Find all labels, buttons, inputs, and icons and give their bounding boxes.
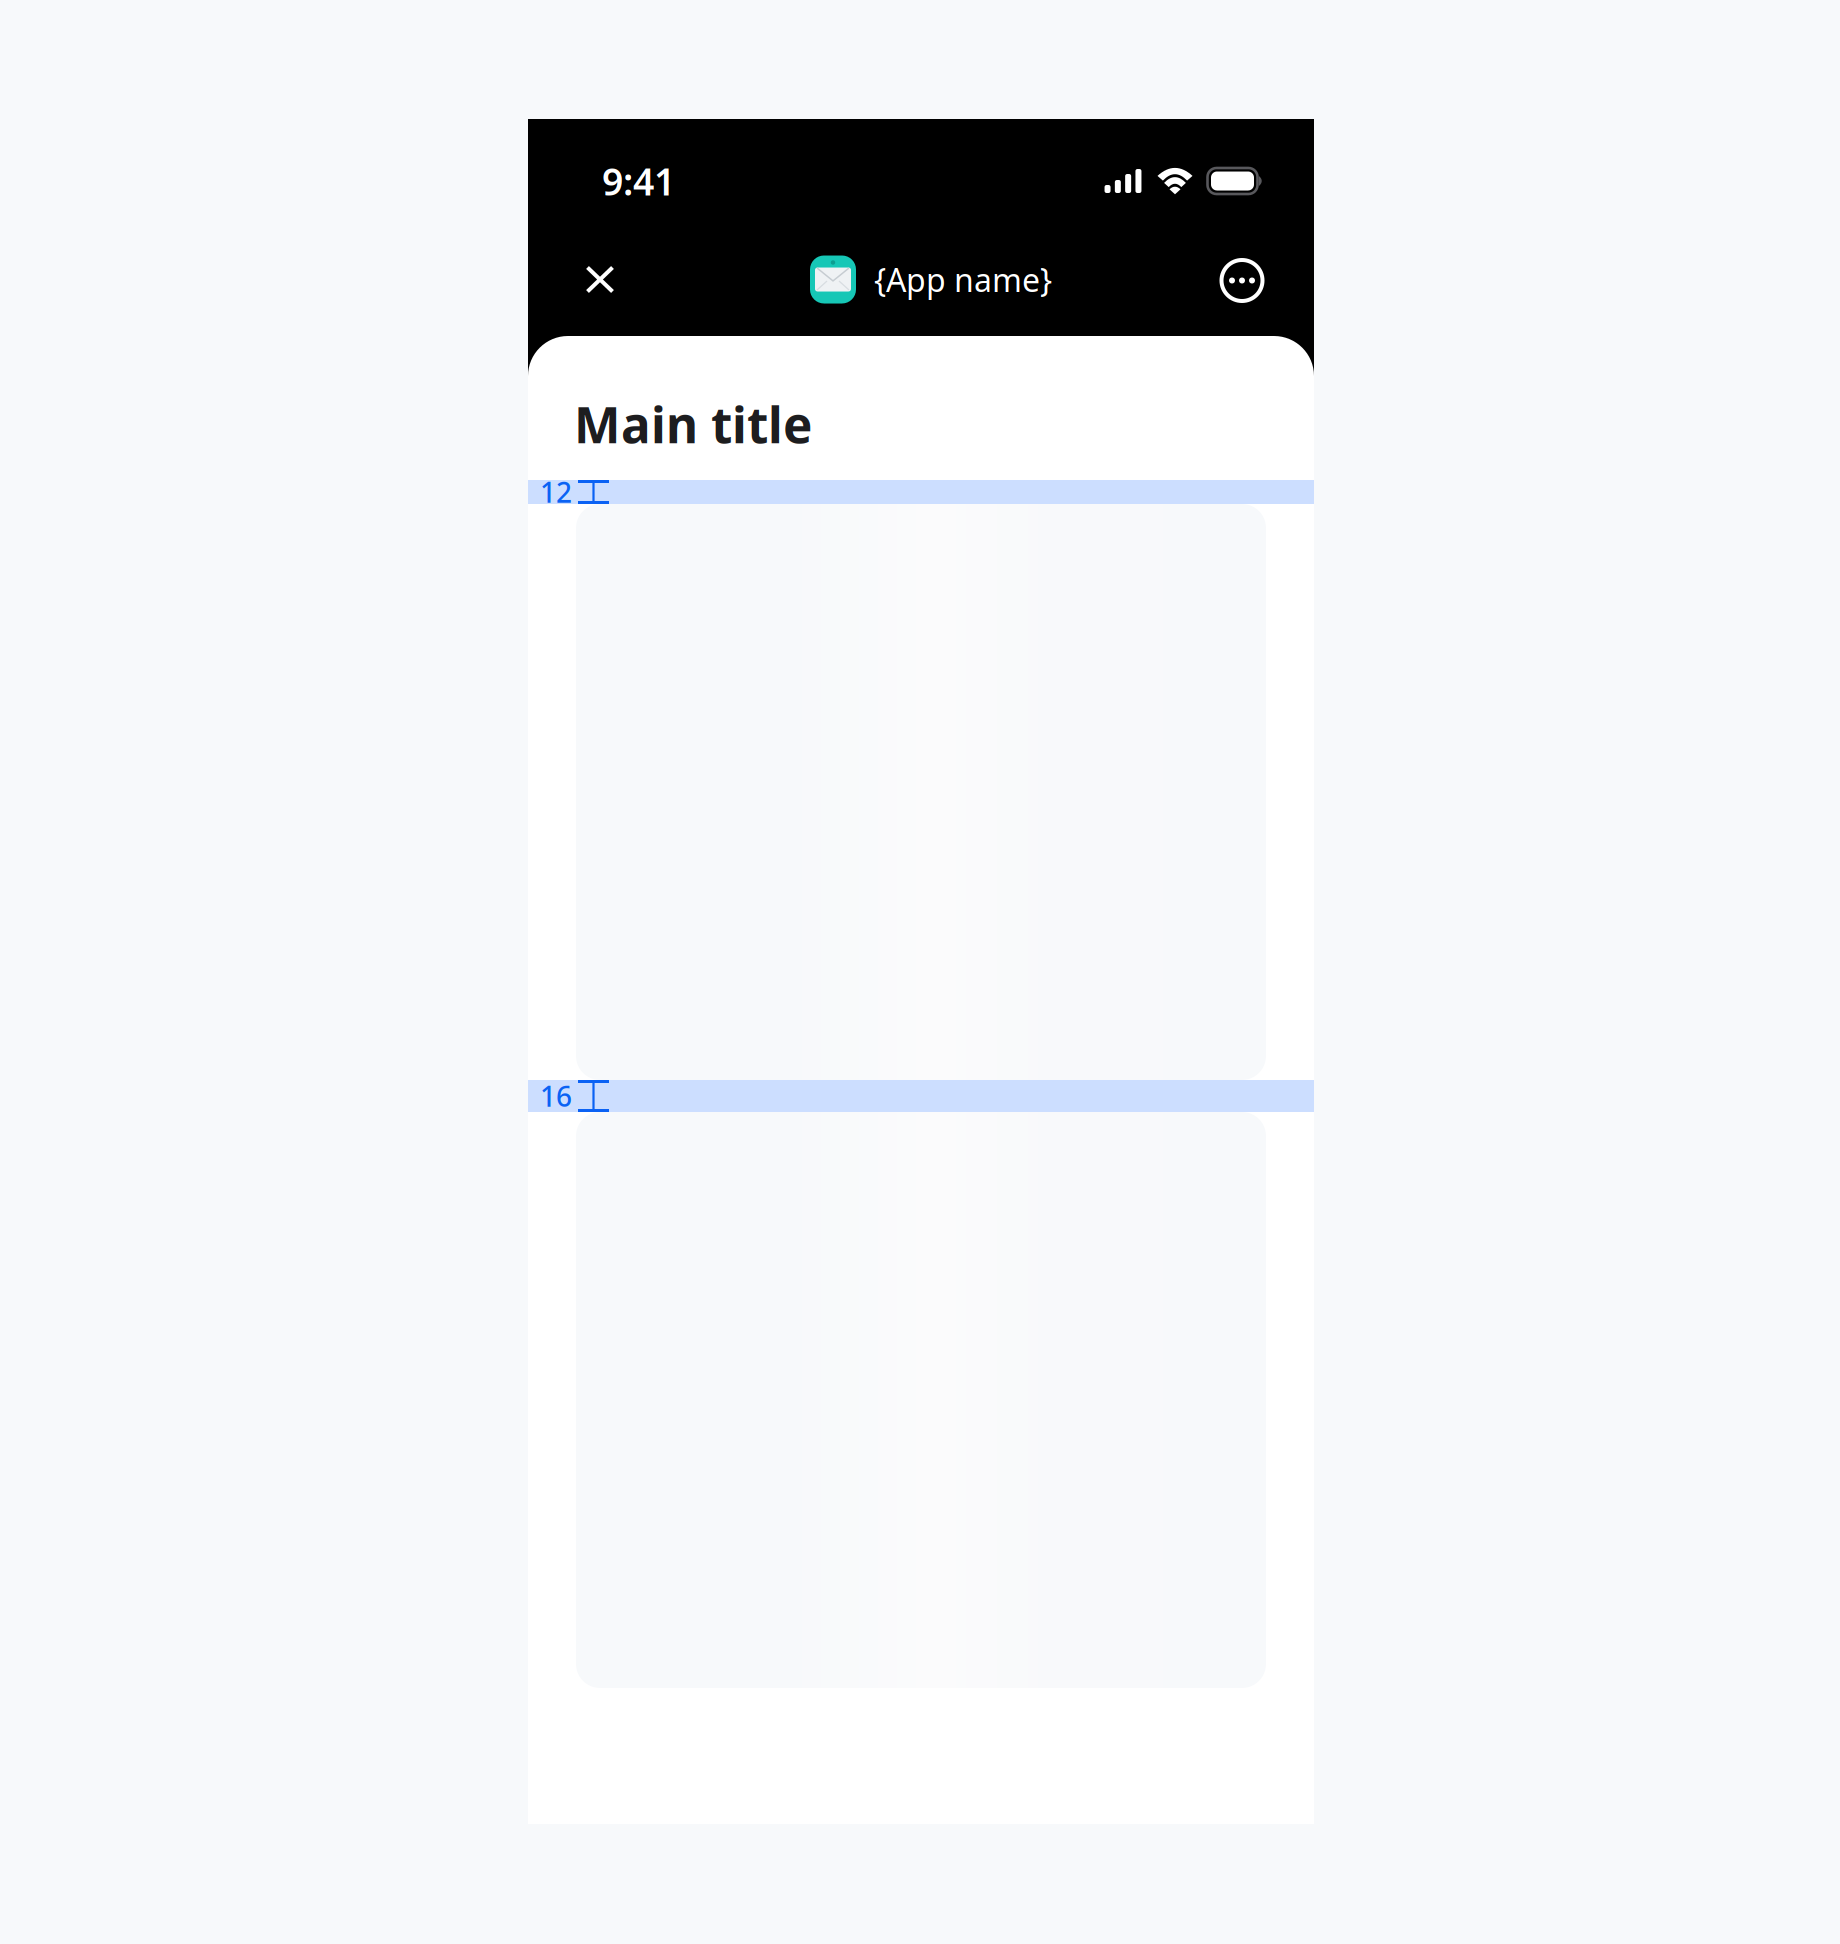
- staticText: 9:41: [602, 156, 675, 206]
- staticText: Main title: [574, 391, 812, 457]
- button[interactable]: More options: [1208, 243, 1280, 315]
- button[interactable]: Close: [564, 243, 636, 315]
- staticText: 12: [540, 473, 572, 511]
- staticText: 16: [540, 1077, 572, 1115]
- button[interactable]: {App name}: [804, 243, 1058, 315]
- staticText: {App name}: [874, 258, 1052, 301]
